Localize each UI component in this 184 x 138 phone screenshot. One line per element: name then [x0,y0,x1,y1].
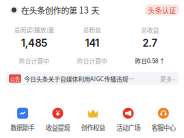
button[interactable]: 创作权益 [75,108,111,132]
staticText: 活动广场 [116,123,140,132]
staticText: 2.7 [142,37,157,49]
staticText: 总阅读(播放)量 [14,25,54,34]
button[interactable]: 收益提现 [40,108,75,132]
button[interactable]: 活动广场 [111,108,146,132]
staticText: 创作权益 [81,123,105,132]
staticText: 收益提现 [46,123,70,132]
button[interactable]: 数据助手 [5,108,40,132]
staticText: 昨日计算中 [77,56,107,65]
staticText: 公告 [10,75,20,82]
staticText: 头条认证 [148,5,176,15]
staticText: 141 [85,37,99,49]
staticText: 昨日计算中 [19,56,49,65]
staticText: 1,485 [21,37,47,49]
staticText: 在头条创作的第 13 天 [21,4,99,16]
staticText: 数据助手 [11,123,35,132]
staticText: 客服中心 [151,123,175,132]
staticText: 总收益 [141,25,159,34]
button[interactable]: 头条认证 [145,4,179,15]
staticText: 今日头条关于自媒体利用AIGC传播违规… [24,74,134,83]
button[interactable]: 公告 [5,72,179,85]
button[interactable]: 客服中心 [146,108,181,132]
staticText: 昨日0.58 ↑ [135,56,165,65]
staticText: 总粉丝 [83,25,101,34]
staticText: 更多 › [160,74,175,83]
